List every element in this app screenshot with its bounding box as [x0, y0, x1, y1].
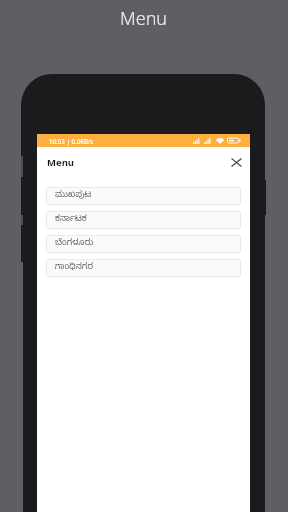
staticText: ಗಾಂಧಿನಗರ [55, 262, 94, 274]
button[interactable]: ಕರ್ನಾಟಕ [46, 211, 241, 229]
button[interactable]: ಬೆಂಗಳೂರು [46, 235, 241, 253]
staticText: ಬೆಂಗಳೂರು [55, 238, 94, 250]
button[interactable]: ಗಾಂಧಿನಗರ [46, 259, 241, 277]
staticText: ಮುಖಪುಟ [55, 190, 92, 202]
staticText: Menu [47, 156, 224, 169]
staticText: Menu [120, 6, 168, 31]
staticText: 10:03 | 0.0KB/s [49, 137, 94, 145]
button[interactable]: ಮುಖಪುಟ [46, 187, 241, 205]
button[interactable]: Close [224, 149, 248, 175]
staticText: ಕರ್ನಾಟಕ [55, 214, 87, 226]
